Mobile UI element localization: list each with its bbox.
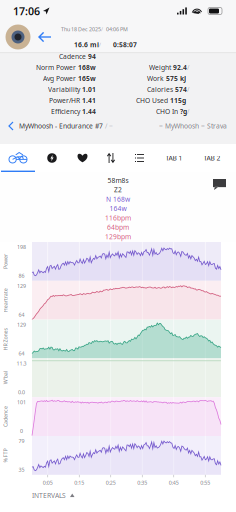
staticText	[80, 85, 82, 94]
button[interactable]: MyWhoosh - Endurance #7	[9, 117, 113, 135]
staticText: 17:06	[13, 4, 40, 18]
staticText: Variability	[48, 85, 80, 94]
staticText: TAB 1	[165, 154, 182, 162]
staticText: / ~	[103, 122, 113, 130]
staticText: ?g	[180, 107, 187, 116]
button[interactable]: Power	[36, 144, 68, 172]
staticText: /	[187, 63, 189, 72]
staticText: Z2	[114, 185, 122, 194]
staticText: 1.01	[82, 85, 96, 94]
staticText: 79	[18, 437, 24, 445]
staticText	[80, 96, 82, 105]
button[interactable]: TAB 2	[194, 144, 230, 172]
staticText: Avg Power	[43, 74, 76, 83]
button[interactable]: Cycling	[0, 144, 36, 172]
staticText: 92.4	[173, 63, 187, 72]
staticText: 0.0	[18, 389, 25, 396]
staticText: Heartrate	[0, 297, 17, 304]
staticText: 0:45	[169, 479, 179, 486]
staticText: Power/HR	[49, 96, 80, 105]
staticText: 11.3	[16, 360, 26, 367]
staticText: 64	[18, 311, 24, 318]
staticText: CHO Used	[136, 96, 168, 105]
staticText: 129	[17, 321, 26, 328]
staticText	[86, 52, 88, 61]
staticText: 101	[17, 399, 26, 406]
staticText: 0:35	[137, 479, 147, 486]
staticText: TAB 2	[203, 154, 220, 162]
staticText: 04:06 PM	[106, 26, 128, 33]
staticText: 58m8s	[107, 176, 128, 185]
staticText: 0:55	[200, 479, 210, 486]
staticText: Norm Power	[36, 63, 76, 72]
staticText: Cadence	[0, 413, 16, 420]
staticText: 0:58:07	[113, 40, 137, 49]
staticText: 16.6 mi	[74, 40, 99, 49]
staticText: 165w	[78, 74, 96, 83]
staticText: % FTP	[0, 452, 12, 459]
staticText: 35	[18, 466, 24, 473]
staticText: 64bpm	[107, 223, 129, 232]
staticText: 0:25	[106, 479, 116, 486]
button[interactable]: Heart rate	[68, 144, 97, 172]
staticText: /	[99, 41, 101, 48]
staticText: MyWhoosh - Endurance #7	[19, 122, 103, 130]
button[interactable]: Profile	[2, 23, 34, 51]
staticText: Work	[147, 74, 164, 83]
button[interactable]: Sort	[97, 144, 125, 172]
staticText: 115g	[170, 96, 186, 105]
staticText: 164w	[109, 204, 126, 213]
staticText	[173, 85, 175, 94]
staticText: 86	[18, 272, 24, 279]
staticText: 198	[17, 243, 26, 251]
staticText: 0:15	[74, 479, 84, 486]
staticText: /	[187, 107, 189, 116]
staticText: 94	[88, 52, 96, 61]
staticText: W'bal	[0, 374, 12, 381]
staticText: Thu 18 Dec 2025	[61, 26, 101, 33]
staticText	[171, 63, 173, 72]
staticText: 168w	[78, 63, 96, 72]
staticText: 129	[17, 282, 26, 289]
button[interactable]: TAB 1	[154, 144, 194, 172]
staticText	[80, 107, 82, 116]
staticText: 1.44	[82, 107, 96, 116]
button[interactable]: INTERVALS	[32, 488, 74, 503]
staticText: Power	[0, 258, 13, 265]
staticText: 575 kJ	[166, 74, 186, 83]
button[interactable]: List	[125, 144, 154, 172]
button[interactable]: Comments	[209, 175, 230, 194]
staticText	[178, 107, 180, 116]
staticText: Weight	[149, 63, 171, 72]
staticText: Efficiency	[51, 107, 80, 116]
staticText: 129bpm	[105, 232, 131, 241]
staticText: /	[187, 85, 189, 94]
staticText: ~ MyWhoosh ~ Strava	[159, 122, 227, 130]
staticText: CHO In	[156, 107, 178, 116]
staticText	[184, 52, 186, 61]
staticText: /	[101, 26, 103, 33]
staticText: INTERVALS	[32, 491, 66, 500]
staticText: HR Zones	[0, 335, 17, 343]
staticText: 1.41	[82, 96, 96, 105]
staticText: Calories	[147, 85, 173, 94]
staticText: 0:05	[43, 479, 53, 486]
staticText: N 168w	[106, 195, 130, 204]
staticText: 0	[20, 427, 23, 434]
staticText: 574	[175, 85, 187, 94]
staticText: 64	[18, 350, 24, 357]
staticText: 116bpm	[105, 213, 131, 222]
button[interactable]: Back	[34, 24, 56, 50]
staticText: Cadence	[59, 52, 86, 61]
